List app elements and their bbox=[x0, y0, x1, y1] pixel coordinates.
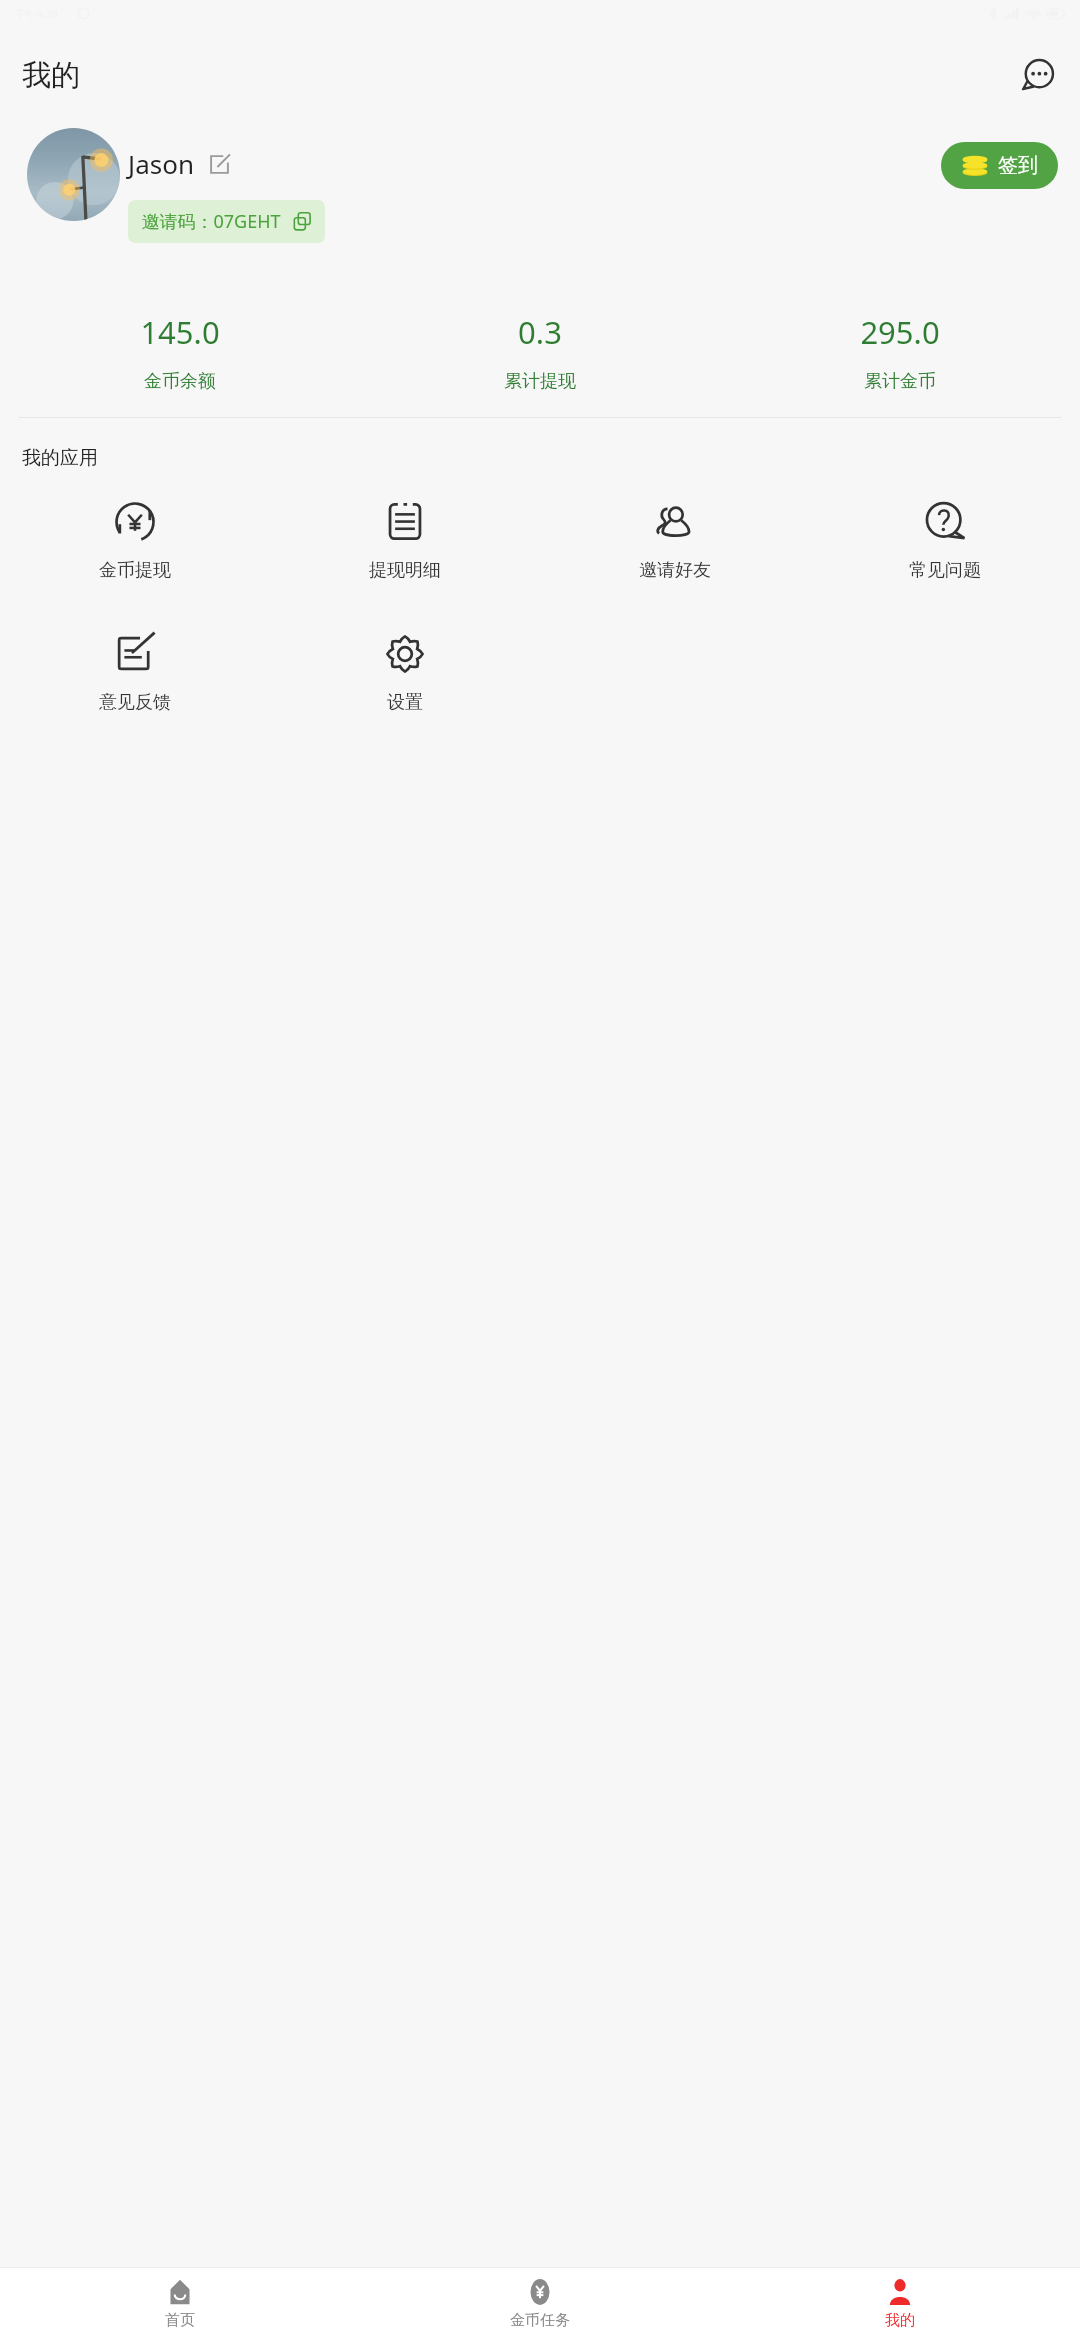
button[interactable]: 0.3 bbox=[360, 311, 720, 393]
button[interactable]: 签到 bbox=[941, 142, 1058, 189]
staticText: 我的 bbox=[885, 2311, 915, 2330]
button[interactable]: 金币任务 bbox=[360, 2268, 720, 2340]
staticText: 意见反馈 bbox=[99, 691, 171, 714]
staticText: Jason bbox=[128, 146, 194, 181]
staticText: 金币任务 bbox=[510, 2311, 570, 2330]
button[interactable]: 金币提现 bbox=[0, 496, 270, 586]
staticText: 累计提现 bbox=[504, 370, 576, 393]
button[interactable]: 145.0 bbox=[0, 311, 360, 393]
staticText: 签到 bbox=[998, 153, 1038, 178]
staticText: 邀请好友 bbox=[639, 559, 711, 582]
staticText: 295.0 bbox=[860, 311, 940, 353]
staticText: 金币提现 bbox=[99, 559, 171, 582]
button[interactable]: 设置 bbox=[270, 628, 540, 718]
button[interactable]: 邀请好友 bbox=[540, 496, 810, 586]
staticText: 提现明细 bbox=[369, 559, 441, 582]
staticText: 邀请码：07GEHT bbox=[141, 209, 281, 234]
button[interactable]: Edit name bbox=[206, 151, 232, 177]
staticText: 我的应用 bbox=[22, 446, 98, 470]
staticText: 0.3 bbox=[518, 311, 562, 353]
button[interactable]: 提现明细 bbox=[270, 496, 540, 586]
staticText: 首页 bbox=[165, 2311, 195, 2330]
button[interactable]: 295.0 bbox=[720, 311, 1080, 393]
staticText: 145.0 bbox=[140, 311, 220, 353]
button[interactable]: 意见反馈 bbox=[0, 628, 270, 718]
staticText: 常见问题 bbox=[909, 559, 981, 582]
staticText: 金币余额 bbox=[144, 370, 216, 393]
button[interactable]: 首页 bbox=[0, 2268, 360, 2340]
button[interactable]: Avatar bbox=[27, 128, 120, 221]
staticText: 我的 bbox=[22, 57, 80, 94]
button[interactable]: 我的 bbox=[720, 2268, 1080, 2340]
staticText: 设置 bbox=[387, 691, 423, 714]
button[interactable]: 常见问题 bbox=[810, 496, 1080, 586]
button[interactable]: Messages bbox=[1016, 53, 1060, 97]
button[interactable]: 邀请码：07GEHT bbox=[128, 200, 325, 243]
staticText: 累计金币 bbox=[864, 370, 936, 393]
